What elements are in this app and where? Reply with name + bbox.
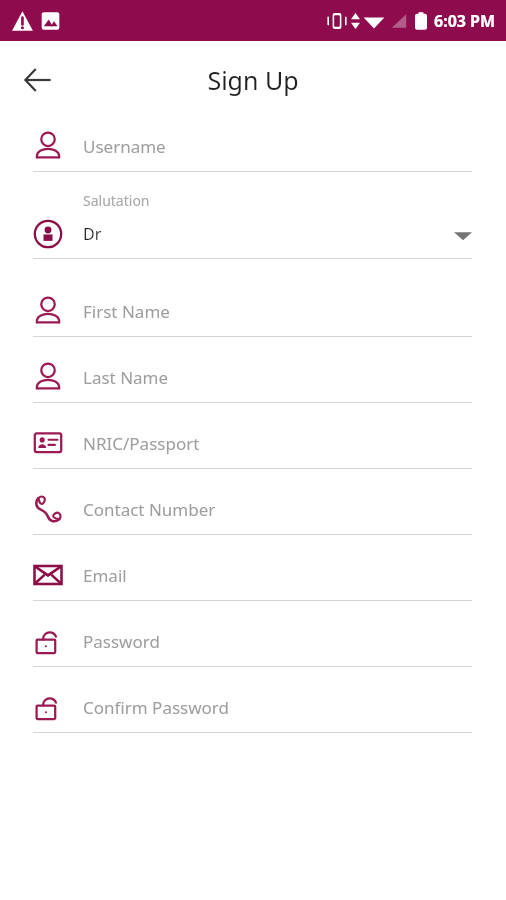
staticText: 6:03 PM bbox=[434, 10, 496, 32]
staticText: Password bbox=[83, 630, 160, 653]
staticText: Confirm Password bbox=[83, 696, 229, 719]
button[interactable]: Back bbox=[14, 56, 62, 104]
staticText: Contact Number bbox=[83, 498, 216, 521]
button[interactable]: Last Name bbox=[0, 349, 506, 403]
staticText: Email bbox=[83, 564, 127, 587]
button[interactable]: Confirm Password bbox=[0, 679, 506, 733]
button[interactable]: Username bbox=[0, 127, 506, 172]
button[interactable]: Salutation bbox=[0, 184, 506, 259]
staticText: Username bbox=[83, 135, 166, 158]
staticText: Sign Up bbox=[207, 63, 299, 97]
staticText: Dr bbox=[83, 223, 102, 245]
button[interactable]: Contact Number bbox=[0, 481, 506, 535]
button[interactable]: Email bbox=[0, 547, 506, 601]
staticText: Last Name bbox=[83, 366, 169, 389]
staticText: Salutation bbox=[83, 191, 150, 210]
staticText: NRIC/Passport bbox=[83, 432, 200, 455]
button[interactable]: Password bbox=[0, 613, 506, 667]
button[interactable]: First Name bbox=[0, 271, 506, 337]
button[interactable]: Open salutation dropdown bbox=[454, 230, 472, 242]
button[interactable]: NRIC/Passport bbox=[0, 415, 506, 469]
staticText: First Name bbox=[83, 300, 170, 323]
